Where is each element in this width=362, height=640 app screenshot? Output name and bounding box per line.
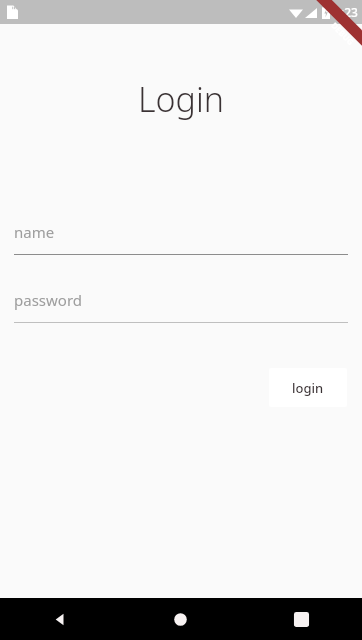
staticText: DEBUG xyxy=(329,20,357,47)
staticText: password xyxy=(14,290,82,310)
button[interactable]: Back xyxy=(0,598,120,640)
button[interactable]: password xyxy=(14,278,348,322)
staticText: login xyxy=(292,379,324,397)
staticText: Login xyxy=(0,76,362,122)
staticText: 6:23 xyxy=(334,4,358,20)
button[interactable]: login xyxy=(269,368,347,407)
button[interactable]: name xyxy=(14,210,348,254)
button[interactable]: Home xyxy=(120,598,241,640)
staticText: name xyxy=(14,222,55,242)
button[interactable]: Recent apps xyxy=(241,598,362,640)
